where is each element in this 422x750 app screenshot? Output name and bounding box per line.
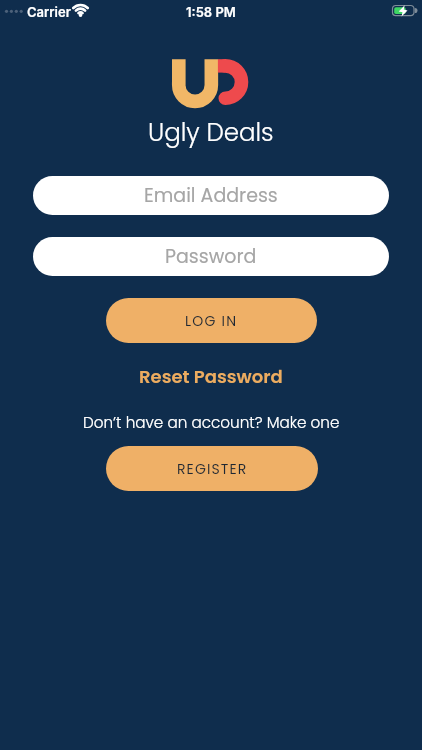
- staticText: 1:58 PM: [186, 4, 236, 20]
- button[interactable]: Email Address: [33, 176, 389, 215]
- staticText: Ugly Deals: [148, 115, 274, 149]
- button[interactable]: Reset Password: [0, 362, 422, 390]
- staticText: Don’t have an account? Make one: [83, 412, 340, 433]
- staticText: REGISTER: [177, 459, 248, 479]
- staticText: Carrier: [27, 4, 71, 20]
- staticText: Reset Password: [139, 364, 283, 389]
- button[interactable]: LOG IN: [106, 298, 317, 343]
- staticText: Email Address: [144, 182, 278, 209]
- button[interactable]: Password: [33, 237, 389, 276]
- staticText: Password: [165, 243, 257, 270]
- staticText: LOG IN: [185, 311, 238, 331]
- button[interactable]: REGISTER: [106, 446, 318, 491]
